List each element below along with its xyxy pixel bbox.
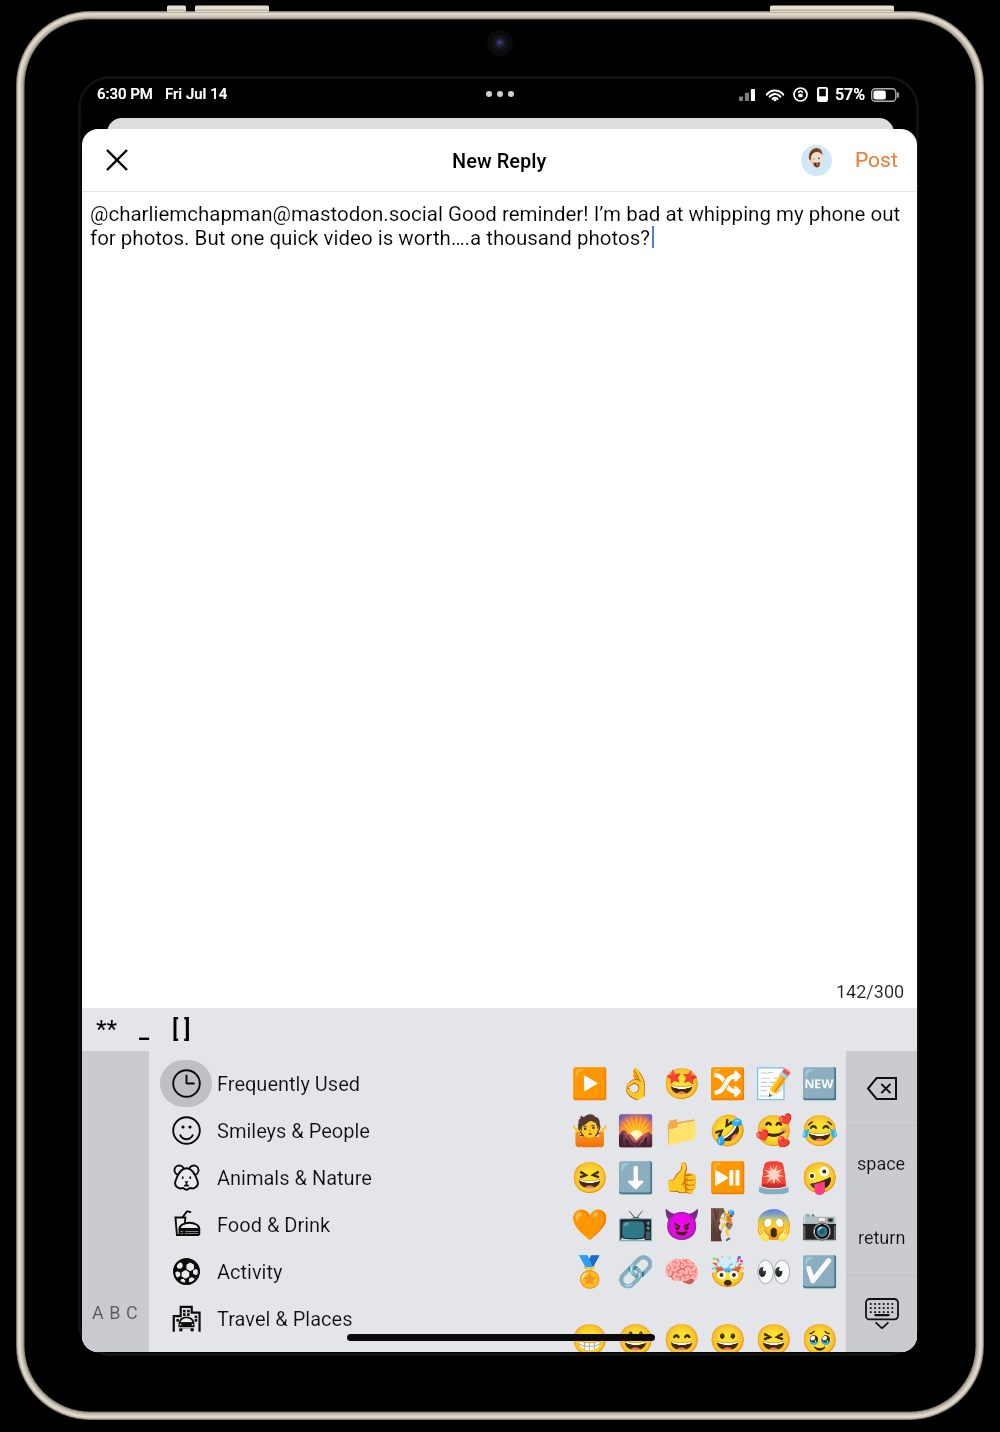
staticText: 🧗 xyxy=(709,1207,747,1242)
button[interactable]: 🆕 xyxy=(797,1060,843,1107)
button[interactable]: ▶️ xyxy=(567,1060,613,1107)
button[interactable]: 🤪 xyxy=(797,1154,843,1201)
button[interactable]: 😆 xyxy=(751,1322,797,1352)
button[interactable]: 👍 xyxy=(659,1154,705,1201)
staticText: @charliemchapman@mastodon.social Good re… xyxy=(90,202,901,226)
staticText: Smileys & People xyxy=(217,1119,370,1142)
button[interactable]: return xyxy=(846,1200,917,1275)
button[interactable]: 🤯 xyxy=(705,1248,751,1295)
staticText: New Reply xyxy=(452,149,547,172)
button[interactable]: 🤣 xyxy=(705,1107,751,1154)
button[interactable]: 🔀 xyxy=(705,1060,751,1107)
staticText: 😂 xyxy=(801,1113,839,1148)
staticText: space xyxy=(857,1153,906,1174)
staticText: 👍 xyxy=(663,1160,701,1195)
staticText: ⏯️ xyxy=(709,1160,747,1195)
button[interactable]: [ ] xyxy=(161,1008,202,1051)
button[interactable]: Hide keyboard xyxy=(846,1276,917,1352)
button[interactable]: 📺 xyxy=(613,1201,659,1248)
button[interactable]: 🥰 xyxy=(751,1107,797,1154)
button[interactable]: 😄 xyxy=(659,1322,705,1352)
staticText: 🧡 xyxy=(571,1207,609,1242)
button[interactable]: 👌 xyxy=(613,1060,659,1107)
staticText: 😁 xyxy=(571,1322,609,1352)
button[interactable]: 📷 xyxy=(797,1201,843,1248)
staticText: 😆 xyxy=(571,1160,609,1195)
button[interactable]: 😂 xyxy=(797,1107,843,1154)
staticText: 🏅 xyxy=(571,1254,609,1289)
button[interactable]: 👀 xyxy=(751,1248,797,1295)
staticText: Animals & Nature xyxy=(217,1166,372,1189)
staticText: 🆕 xyxy=(801,1066,839,1101)
button[interactable]: 🔗 xyxy=(613,1248,659,1295)
staticText: ▶️ xyxy=(571,1066,609,1101)
staticText: 😃 xyxy=(617,1322,655,1352)
button[interactable]: 🧡 xyxy=(567,1201,613,1248)
button[interactable]: 🥹 xyxy=(797,1322,843,1352)
button[interactable]: Travel & Places xyxy=(149,1295,565,1342)
button[interactable]: Delete xyxy=(846,1051,917,1125)
button[interactable]: ⬇️ xyxy=(613,1154,659,1201)
button[interactable]: Post xyxy=(850,138,903,183)
staticText: for photos. But one quick video is worth… xyxy=(90,226,650,250)
staticText: 🤯 xyxy=(709,1254,747,1289)
staticText: 6:30 PM xyxy=(97,85,153,103)
staticText: [ ] xyxy=(172,1016,191,1043)
button[interactable]: space xyxy=(846,1126,917,1200)
button[interactable]: ⏯️ xyxy=(705,1154,751,1201)
button[interactable]: 🤷 xyxy=(567,1107,613,1154)
button[interactable]: A B C xyxy=(82,1051,149,1352)
staticText: Activity xyxy=(217,1260,283,1283)
staticText: ⬇️ xyxy=(617,1160,655,1195)
button[interactable]: ☑️ xyxy=(797,1248,843,1295)
button[interactable]: _ xyxy=(128,1008,161,1051)
staticText: Travel & Places xyxy=(217,1307,353,1330)
button[interactable]: 😱 xyxy=(751,1201,797,1248)
button[interactable]: 😃 xyxy=(613,1322,659,1352)
button[interactable]: Food & Drink xyxy=(149,1201,565,1248)
staticText: 57% xyxy=(835,85,865,104)
button[interactable]: 🧠 xyxy=(659,1248,705,1295)
button[interactable]: ** xyxy=(86,1008,128,1051)
button[interactable]: 🧗 xyxy=(705,1201,751,1248)
staticText: Frequently Used xyxy=(217,1072,361,1095)
button[interactable]: Close xyxy=(95,138,139,182)
button[interactable]: 🤩 xyxy=(659,1060,705,1107)
staticText: A B C xyxy=(92,1302,139,1323)
staticText: Post xyxy=(855,148,898,173)
staticText: 🚨 xyxy=(755,1160,793,1195)
staticText: 🤩 xyxy=(663,1066,701,1101)
staticText: 142/300 xyxy=(836,981,905,1002)
staticText: 📷 xyxy=(801,1207,839,1242)
staticText: Food & Drink xyxy=(217,1213,331,1236)
button[interactable]: Animals & Nature xyxy=(149,1154,565,1201)
button[interactable]: 😈 xyxy=(659,1201,705,1248)
staticText: 🔗 xyxy=(617,1254,655,1289)
button[interactable]: 😁 xyxy=(567,1322,613,1352)
button[interactable]: Activity xyxy=(149,1248,565,1295)
staticText: 😆 xyxy=(755,1322,793,1352)
staticText: 🤷 xyxy=(571,1113,609,1148)
staticText: 🤣 xyxy=(709,1113,747,1148)
button[interactable]: Frequently Used xyxy=(149,1060,565,1107)
staticText: 😱 xyxy=(755,1207,793,1242)
staticText: ** xyxy=(96,1016,117,1043)
staticText: 👀 xyxy=(755,1254,793,1289)
staticText: 🤪 xyxy=(801,1160,839,1195)
staticText: 🌄 xyxy=(617,1113,655,1148)
button[interactable]: 😆 xyxy=(567,1154,613,1201)
button[interactable]: 😀 xyxy=(705,1322,751,1352)
staticText: 📁 xyxy=(663,1113,701,1148)
button[interactable]: Smileys & People xyxy=(149,1107,565,1154)
button[interactable]: Account xyxy=(801,145,832,176)
button[interactable]: 📝 xyxy=(751,1060,797,1107)
staticText: 📝 xyxy=(755,1066,793,1101)
button[interactable]: 🚨 xyxy=(751,1154,797,1201)
button[interactable]: 📁 xyxy=(659,1107,705,1154)
button[interactable]: 🏅 xyxy=(567,1248,613,1295)
staticText: 😄 xyxy=(663,1322,701,1352)
staticText: 📺 xyxy=(617,1207,655,1242)
staticText: 👌 xyxy=(617,1066,655,1101)
staticText: 😀 xyxy=(709,1322,747,1352)
button[interactable]: 🌄 xyxy=(613,1107,659,1154)
